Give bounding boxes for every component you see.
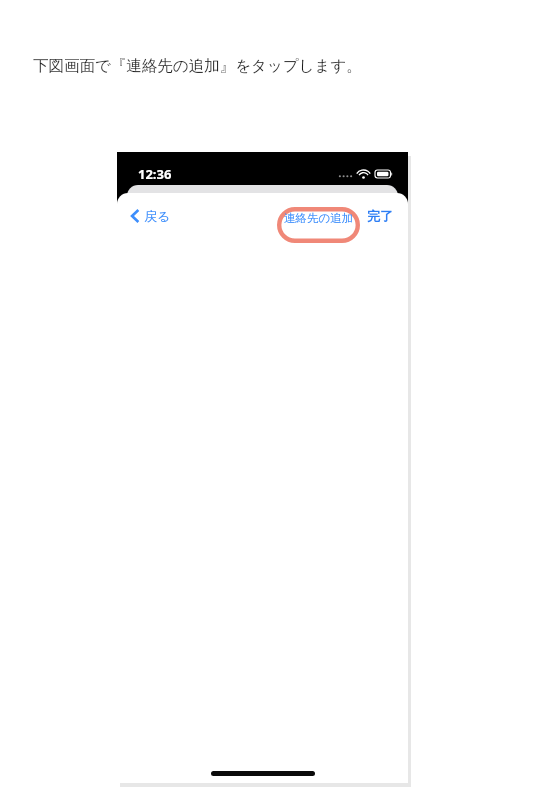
staticText: 12:36 [138, 165, 172, 183]
button[interactable]: 完了 [364, 203, 396, 229]
button[interactable]: 連絡先の追加 [277, 207, 360, 243]
staticText: 下図画面で『連絡先の追加』をタップします。 [33, 56, 533, 76]
staticText: 完了 [367, 208, 393, 224]
staticText: 連絡先の追加 [284, 211, 354, 225]
button[interactable]: 戻る [125, 203, 177, 229]
staticText: 戻る [144, 208, 171, 224]
